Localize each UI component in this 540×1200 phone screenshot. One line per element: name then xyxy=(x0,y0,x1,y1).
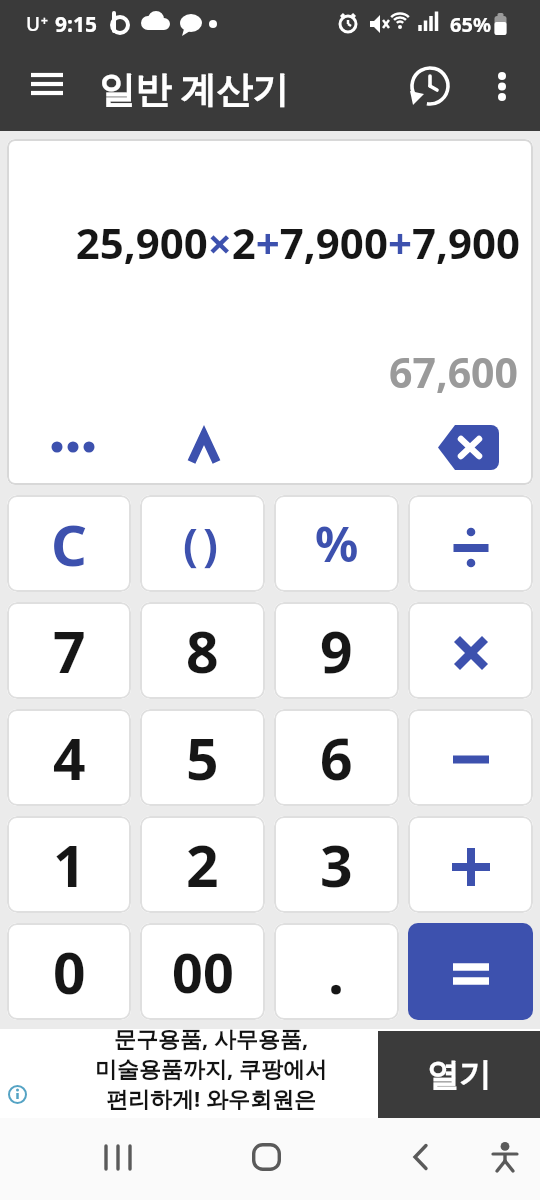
button[interactable]: 3 xyxy=(274,816,399,913)
button[interactable]: 8 xyxy=(140,602,265,699)
button[interactable]: 6 xyxy=(274,709,399,806)
button[interactable] xyxy=(475,1127,535,1187)
button[interactable]: 2 xyxy=(140,816,265,913)
button[interactable]: 00 xyxy=(140,923,265,1020)
button[interactable] xyxy=(174,422,234,472)
staticText: 9 xyxy=(320,612,353,690)
button[interactable]: 문구용품, 사무용품, xyxy=(0,1029,540,1118)
staticText: 4 xyxy=(53,719,86,797)
button[interactable]: 5 xyxy=(140,709,265,806)
staticText: 00 xyxy=(172,935,234,1009)
staticText: 9:15 xyxy=(55,10,97,39)
staticText: () xyxy=(183,514,223,574)
button[interactable] xyxy=(408,816,533,913)
button[interactable] xyxy=(14,67,80,100)
button[interactable]: 4 xyxy=(7,709,131,806)
button[interactable]: . xyxy=(274,923,399,1020)
staticText: 25,900×2+7,900+7,900 xyxy=(7,214,520,271)
button[interactable] xyxy=(43,424,103,470)
button[interactable]: 1 xyxy=(7,816,131,913)
staticText: . xyxy=(328,933,345,1011)
button[interactable]: % xyxy=(274,495,399,592)
staticText: 5 xyxy=(186,719,219,797)
staticText: 8 xyxy=(186,612,219,690)
button[interactable]: 7 xyxy=(7,602,131,699)
button[interactable] xyxy=(427,418,509,476)
staticText: + xyxy=(41,12,48,28)
staticText: 미술용품까지, 쿠팡에서 xyxy=(95,1053,327,1083)
button[interactable] xyxy=(404,60,456,112)
button[interactable] xyxy=(408,495,533,592)
staticText: 3 xyxy=(320,826,353,904)
button[interactable] xyxy=(88,1127,148,1187)
button[interactable] xyxy=(408,602,533,699)
button[interactable]: C xyxy=(7,495,131,592)
button[interactable] xyxy=(408,709,533,806)
staticText: % xyxy=(315,511,359,576)
staticText: 0 xyxy=(53,933,86,1011)
staticText: 65% xyxy=(450,11,491,38)
button[interactable] xyxy=(390,1127,450,1187)
button[interactable]: 9 xyxy=(274,602,399,699)
staticText: U xyxy=(26,11,41,37)
staticText: 편리하게! 와우회원은 xyxy=(106,1083,316,1112)
button[interactable] xyxy=(480,60,524,112)
button[interactable]: 0 xyxy=(7,923,131,1020)
staticText: 열기 xyxy=(427,1055,491,1095)
button[interactable] xyxy=(408,923,533,1020)
staticText: C xyxy=(51,506,87,582)
staticText: 67,600 xyxy=(7,344,518,400)
staticText: 6 xyxy=(320,719,353,797)
staticText: 문구용품, 사무용품, xyxy=(114,1023,309,1053)
staticText: 1 xyxy=(53,826,86,904)
button[interactable]: 열기 xyxy=(378,1031,540,1119)
staticText: 일반 계산기 xyxy=(99,64,289,113)
button[interactable] xyxy=(236,1127,296,1187)
button[interactable]: () xyxy=(140,495,265,592)
staticText: 7 xyxy=(53,612,86,690)
staticText: 2 xyxy=(186,826,219,904)
